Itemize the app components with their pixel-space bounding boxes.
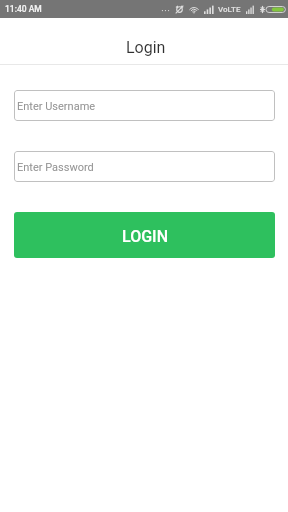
staticText: Login xyxy=(126,38,166,57)
staticText: Enter Username xyxy=(17,100,96,113)
staticText: LOGIN xyxy=(122,227,168,246)
staticText: 11:40 AM xyxy=(5,4,42,14)
other: More notifications xyxy=(161,5,170,14)
other: Charging xyxy=(260,5,265,14)
button[interactable]: LOGIN xyxy=(14,212,275,258)
button[interactable]: Enter Username xyxy=(14,90,275,121)
other: Mobile signal SIM 1 xyxy=(204,5,215,14)
other: Mobile signal SIM 2 xyxy=(246,5,255,14)
other: Battery xyxy=(266,5,286,14)
staticText: Enter Password xyxy=(17,161,94,174)
other: Wi-Fi xyxy=(189,5,199,14)
staticText: VoLTE xyxy=(218,5,241,14)
other: Alarm xyxy=(175,5,184,14)
button[interactable]: Enter Password xyxy=(14,151,275,182)
